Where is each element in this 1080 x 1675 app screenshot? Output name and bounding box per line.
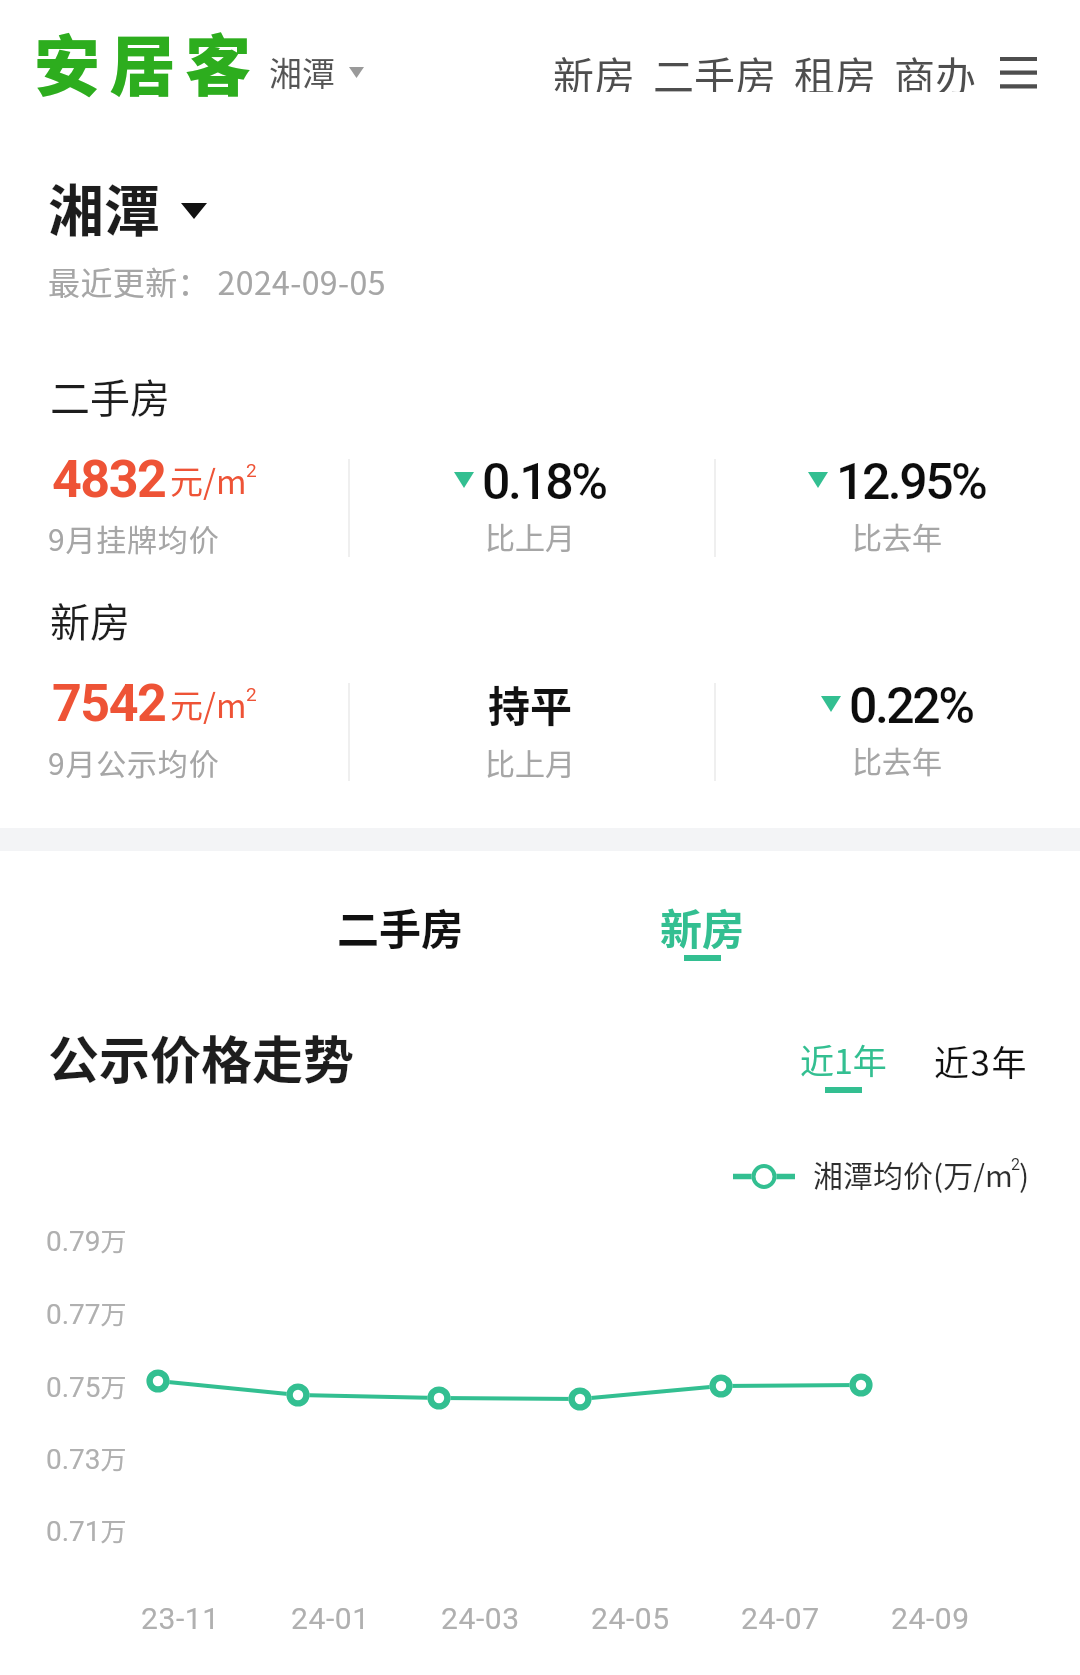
staticText: 新房 [50, 591, 130, 649]
staticText: 比去年 [852, 514, 942, 557]
staticText: 最近更新： 2024-09-05 [48, 258, 386, 304]
button[interactable]: Menu [996, 44, 1040, 92]
staticText: 商办 [894, 44, 976, 92]
staticText: 24-07 [741, 1601, 820, 1636]
button[interactable]: 商办 [894, 44, 976, 92]
staticText: 2 [1011, 1155, 1020, 1174]
button[interactable]: 湘潭 [48, 166, 207, 247]
staticText: 0.75万 [46, 1367, 127, 1405]
button[interactable]: 12.95% [697, 453, 1080, 557]
button[interactable]: 二手房 [280, 877, 520, 977]
button[interactable]: 新房 [582, 874, 822, 974]
staticText: 二手房 [337, 896, 464, 957]
staticText: 0.22% [849, 677, 973, 736]
button[interactable]: 持平 [330, 677, 730, 783]
button[interactable]: 近3年 [921, 1015, 1041, 1115]
staticText: 比上月 [485, 514, 575, 557]
staticText: 4832 [52, 449, 166, 510]
staticText: 湘潭 [269, 48, 335, 96]
staticText: 比去年 [852, 738, 942, 781]
staticText: 24-05 [591, 1601, 670, 1636]
staticText: 24-01 [291, 1601, 370, 1636]
staticText: 湘潭均价(万/m [813, 1152, 1013, 1195]
staticText: 公示价格走势 [48, 1020, 355, 1094]
staticText: ) [1019, 1152, 1030, 1195]
staticText: 2 [246, 683, 257, 705]
staticText: 安居客 [34, 13, 261, 109]
staticText: 新房 [553, 44, 635, 92]
staticText: 元/m [170, 680, 247, 728]
button[interactable]: 近1年 [783, 1015, 903, 1115]
staticText: 近1年 [800, 1035, 887, 1084]
button[interactable]: 新房 [553, 44, 635, 92]
button[interactable]: 安居客 [34, 13, 261, 109]
staticText: 0.79万 [46, 1221, 127, 1259]
staticText: 0.18% [482, 453, 606, 512]
staticText: 比上月 [485, 740, 575, 783]
staticText: 23-11 [141, 1601, 220, 1636]
staticText: 二手房 [50, 367, 170, 425]
staticText: 近3年 [934, 1035, 1028, 1086]
button[interactable]: 0.18% [330, 453, 730, 557]
button[interactable]: 7542 [52, 673, 166, 734]
staticText: 元/m [170, 456, 247, 504]
button[interactable]: 湘潭 [269, 48, 364, 96]
staticText: 9月公示均价 [48, 740, 220, 783]
button[interactable]: 租房 [794, 44, 876, 92]
staticText: 0.71万 [46, 1511, 127, 1549]
staticText: 湘潭 [48, 166, 160, 247]
staticText: 2 [246, 459, 257, 481]
staticText: 7542 [52, 673, 166, 734]
staticText: 持平 [488, 673, 573, 734]
staticText: 9月挂牌均价 [48, 516, 220, 559]
staticText: 二手房 [653, 44, 776, 92]
staticText: 24-03 [441, 1601, 520, 1636]
staticText: 0.73万 [46, 1439, 127, 1477]
staticText: 12.95% [836, 453, 986, 512]
staticText: 租房 [794, 44, 876, 92]
button[interactable]: 4832 [52, 449, 166, 510]
staticText: 新房 [660, 896, 745, 957]
staticText: 0.77万 [46, 1294, 127, 1332]
button[interactable]: 0.22% [697, 677, 1080, 781]
button[interactable]: 二手房 [653, 44, 776, 92]
staticText: 24-09 [891, 1601, 970, 1636]
